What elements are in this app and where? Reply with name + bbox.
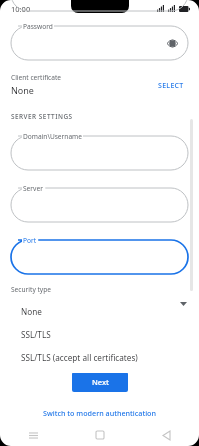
staticText: Server [23, 184, 43, 193]
button[interactable]: Back [133, 424, 199, 446]
button[interactable]: Client certificate [11, 73, 154, 96]
button[interactable]: SELECT [154, 77, 188, 95]
button[interactable]: SSL/TLS [8, 323, 163, 346]
button[interactable]: Domain\Username [11, 130, 188, 170]
staticText: Security type [11, 285, 51, 294]
staticText: Domain\Username [23, 132, 82, 141]
staticText: None [21, 306, 42, 317]
staticText: Switch to modern authentication [43, 408, 156, 418]
button[interactable]: SSL/TLS (accept all certificates) [8, 346, 163, 369]
staticText: Port [23, 236, 37, 245]
other: Security type dropdown [178, 299, 188, 309]
staticText: Password [23, 22, 53, 31]
staticText: None [11, 84, 34, 96]
button[interactable]: Show password [163, 34, 181, 52]
staticText: SSL/TLS (accept all certificates) [21, 352, 138, 363]
button[interactable]: Port [11, 234, 188, 274]
button[interactable]: Security type [11, 285, 188, 319]
button[interactable]: Recents [0, 424, 67, 446]
staticText: SERVER SETTINGS [11, 112, 73, 121]
staticText: SELECT [158, 81, 184, 91]
staticText: SSL/TLS [21, 329, 51, 340]
button[interactable]: Next [72, 372, 128, 392]
button[interactable]: Home [67, 424, 133, 446]
button[interactable]: Password [11, 20, 188, 60]
button[interactable]: Switch to modern authentication [37, 406, 162, 420]
staticText: Client certificate [11, 73, 62, 82]
staticText: Next [92, 377, 109, 387]
button[interactable]: None [8, 300, 163, 323]
staticText: 10:00 [11, 4, 31, 14]
button[interactable]: Server [11, 182, 188, 222]
